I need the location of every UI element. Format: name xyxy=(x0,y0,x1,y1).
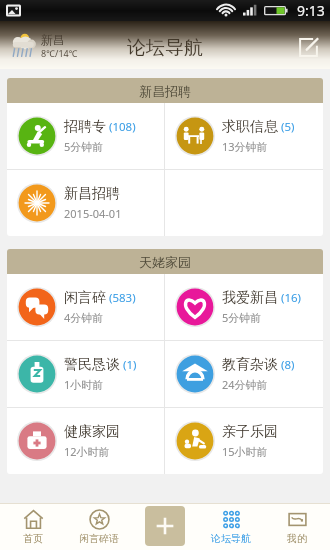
staticText: 新昌 xyxy=(41,32,65,47)
staticText: 8℃/14℃ xyxy=(41,47,78,59)
staticText: (5) xyxy=(281,119,295,135)
staticText: 论坛导航 xyxy=(211,532,251,545)
staticText: 13分钟前 xyxy=(222,139,268,154)
staticText: (108) xyxy=(109,119,136,135)
staticText: 教育杂谈 xyxy=(222,356,278,374)
staticText: 5分钟前 xyxy=(64,139,104,154)
staticText: 我爱新昌 xyxy=(222,289,278,307)
staticText: 我的 xyxy=(287,532,307,545)
button[interactable]: 我的 xyxy=(264,503,330,550)
staticText: 求职信息 xyxy=(222,118,278,136)
staticText: (16) xyxy=(281,290,302,306)
staticText: 天姥家园 xyxy=(139,254,191,270)
button[interactable]: 新昌招聘 xyxy=(7,170,164,236)
staticText: (583) xyxy=(109,290,136,306)
button[interactable]: 我爱新昌 xyxy=(165,274,323,340)
staticText: 闲言碎 xyxy=(64,289,106,307)
staticText: 9:13 xyxy=(297,1,325,20)
staticText: 24分钟前 xyxy=(222,377,268,392)
staticText: 2015-04-01 xyxy=(64,206,122,221)
button[interactable]: 编辑 xyxy=(292,31,324,63)
button[interactable]: 警民恳谈 xyxy=(7,341,164,407)
button[interactable]: 发布 xyxy=(145,506,185,546)
button[interactable]: 闲言碎语 xyxy=(66,503,132,550)
staticText: (8) xyxy=(281,357,295,373)
staticText: 健康家园 xyxy=(64,423,120,441)
staticText: 亲子乐园 xyxy=(222,423,278,441)
button[interactable]: 论坛导航 xyxy=(198,503,264,550)
staticText: 警民恳谈 xyxy=(64,356,120,374)
button[interactable]: 招聘专 xyxy=(7,103,164,169)
staticText: 首页 xyxy=(23,532,43,545)
button[interactable]: 求职信息 xyxy=(165,103,323,169)
button[interactable]: 新昌 xyxy=(6,28,80,62)
button[interactable]: 首页 xyxy=(0,503,66,550)
staticText: 12小时前 xyxy=(64,444,110,459)
staticText: 新昌招聘 xyxy=(64,185,120,203)
button[interactable]: 亲子乐园 xyxy=(165,408,323,474)
staticText: 5分钟前 xyxy=(222,310,262,325)
staticText: (1) xyxy=(123,357,137,373)
staticText: 论坛导航 xyxy=(127,36,203,60)
staticText: 15小时前 xyxy=(222,444,268,459)
button[interactable]: 闲言碎 xyxy=(7,274,164,340)
button[interactable]: 教育杂谈 xyxy=(165,341,323,407)
staticText: 4分钟前 xyxy=(64,310,104,325)
staticText: 1小时前 xyxy=(64,377,104,392)
staticText: 闲言碎语 xyxy=(79,532,119,545)
staticText: 新昌招聘 xyxy=(139,83,191,99)
staticText: 招聘专 xyxy=(64,118,106,136)
button[interactable]: 健康家园 xyxy=(7,408,164,474)
